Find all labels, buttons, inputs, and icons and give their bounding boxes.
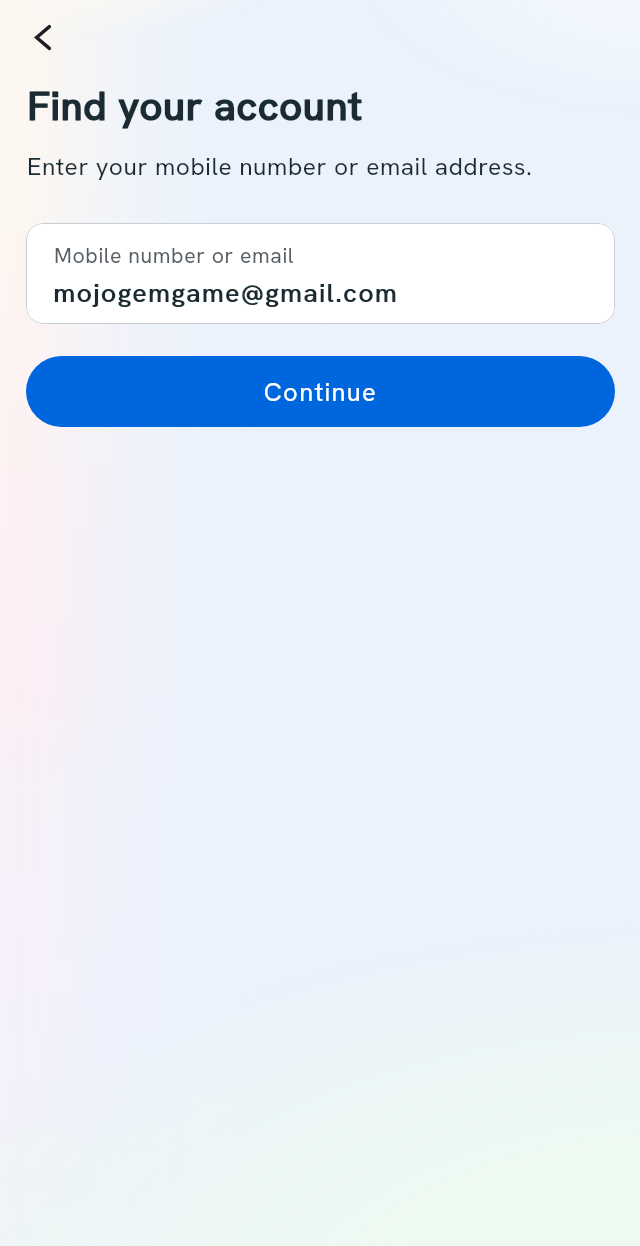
staticText: Continue: [26, 375, 615, 408]
staticText: Mobile number or email: [54, 242, 295, 270]
staticText: mojogemgame@gmail.com: [53, 276, 398, 310]
button[interactable]: Mobile number or email: [26, 223, 615, 324]
staticText: Find your account: [28, 80, 364, 131]
staticText: Enter your mobile number or email addres…: [27, 150, 533, 182]
button[interactable]: Continue: [26, 356, 615, 427]
staticText: mojogemgame@gmail.com: [54, 276, 399, 310]
button[interactable]: Back: [15, 9, 71, 65]
staticText: Find your account: [27, 80, 363, 131]
